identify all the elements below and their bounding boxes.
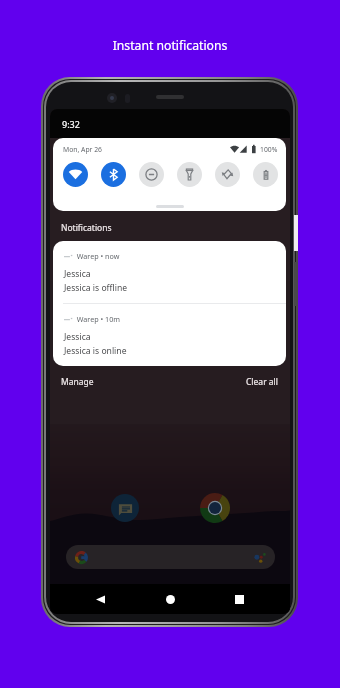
staticText: Warep • 10m [73, 314, 120, 324]
staticText: Jessica is offline [64, 282, 128, 294]
button[interactable]: Bluetooth [101, 162, 126, 187]
button[interactable]: Manage [61, 376, 94, 388]
staticText: 100% [260, 145, 278, 154]
button[interactable]: Do not disturb [139, 162, 164, 187]
staticText: Manage [61, 376, 94, 388]
button[interactable]: Search [66, 545, 275, 569]
button[interactable]: Back [84, 584, 116, 614]
button[interactable]: Flashlight [177, 162, 202, 187]
staticText: Jessica is online [64, 345, 127, 357]
button[interactable]: Chrome [200, 493, 230, 523]
staticText: Mon, Apr 26 [63, 145, 102, 154]
staticText: Notifications [61, 222, 112, 234]
button[interactable]: Home [154, 584, 186, 614]
button[interactable]: Battery saver [253, 162, 278, 187]
staticText: Jessica [64, 331, 91, 343]
staticText: Warep • now [73, 251, 120, 261]
staticText: 9:32 [62, 118, 80, 130]
staticText: Clear all [246, 376, 279, 388]
button[interactable]: Wi-Fi [63, 162, 88, 187]
button[interactable]: Messages [111, 494, 139, 522]
button[interactable]: Warep • 10m [53, 304, 286, 366]
staticText: Instant notifications [0, 37, 340, 54]
button[interactable]: Auto rotate [215, 162, 240, 187]
button[interactable]: Warep • now [53, 241, 286, 303]
button[interactable]: Recent apps [223, 584, 255, 614]
staticText: Jessica [64, 268, 91, 280]
button[interactable]: Clear all [246, 376, 279, 388]
